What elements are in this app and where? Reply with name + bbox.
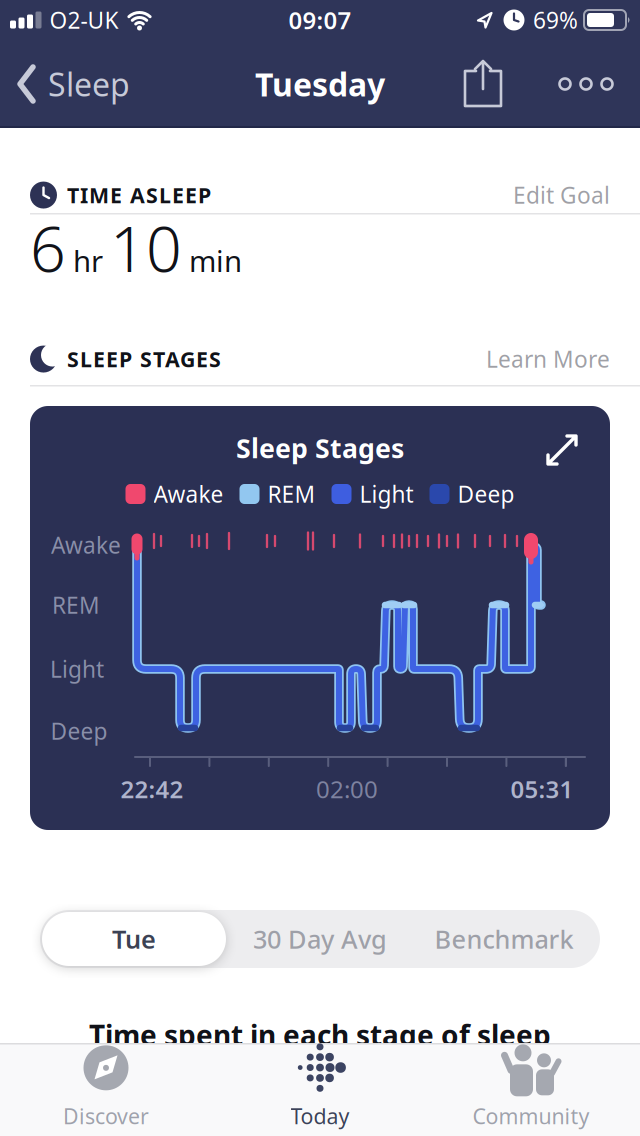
staticText: 6: [30, 206, 66, 289]
button[interactable]: Tue: [42, 912, 226, 966]
button[interactable]: Benchmark: [434, 922, 573, 956]
staticText: Time spent in each stage of sleep: [89, 1016, 551, 1054]
button[interactable]: Sleep: [0, 63, 130, 105]
button[interactable]: Expand: [544, 432, 580, 468]
staticText: Sleep: [48, 63, 130, 105]
staticText: Awake: [153, 479, 223, 509]
staticText: Benchmark: [434, 922, 573, 956]
staticText: Discover: [63, 1102, 149, 1130]
button[interactable]: Learn More: [486, 344, 610, 374]
staticText: Awake: [51, 530, 121, 560]
staticText: 69%: [533, 5, 578, 35]
button[interactable]: More options: [504, 76, 640, 92]
staticText: Tuesday: [255, 63, 385, 105]
button[interactable]: Share: [462, 59, 504, 109]
staticText: REM: [52, 590, 100, 620]
staticText: Community: [472, 1102, 589, 1130]
staticText: Deep: [457, 479, 514, 509]
staticText: 05:31: [510, 773, 573, 805]
staticText: 02:00: [316, 773, 378, 805]
staticText: 10: [110, 206, 182, 289]
staticText: Edit Goal: [513, 180, 610, 210]
button[interactable]: 30 Day Avg: [253, 922, 387, 956]
staticText: 09:07: [288, 4, 351, 36]
button[interactable]: Community: [472, 1040, 589, 1130]
button[interactable]: Discover: [63, 1040, 149, 1130]
staticText: 30 Day Avg: [253, 922, 387, 956]
staticText: Sleep Stages: [236, 430, 404, 466]
staticText: Deep: [50, 716, 107, 746]
staticText: Learn More: [486, 344, 610, 374]
staticText: Today: [290, 1102, 349, 1130]
staticText: 22:42: [120, 773, 183, 805]
staticText: TIME ASLEEP: [67, 181, 211, 209]
staticText: SLEEP STAGES: [67, 345, 221, 373]
staticText: Light: [50, 654, 104, 684]
button[interactable]: Edit Goal: [513, 180, 610, 210]
staticText: hr: [73, 241, 103, 280]
staticText: O2-UK: [49, 5, 118, 35]
staticText: Tue: [112, 922, 156, 956]
button[interactable]: Today: [290, 1040, 349, 1130]
staticText: Light: [359, 479, 413, 509]
staticText: min: [189, 241, 242, 280]
staticText: REM: [267, 479, 315, 509]
